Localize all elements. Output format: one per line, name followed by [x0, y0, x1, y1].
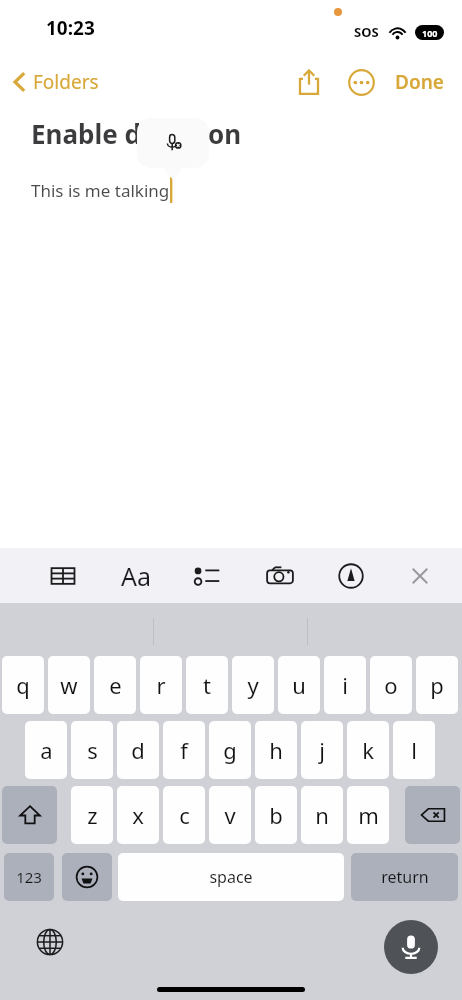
- button[interactable]: c: [163, 786, 205, 844]
- button[interactable]: p: [416, 656, 458, 714]
- button[interactable]: Done: [389, 59, 450, 105]
- staticText: r: [156, 670, 166, 700]
- staticText: y: [247, 670, 259, 700]
- staticText: SOS: [354, 23, 379, 41]
- staticText: c: [179, 800, 190, 830]
- button[interactable]: z: [71, 786, 113, 844]
- button[interactable]: Markup: [326, 548, 376, 603]
- button[interactable]: Switch keyboard: [28, 920, 72, 964]
- button[interactable]: w: [48, 656, 90, 714]
- staticText: q: [16, 670, 30, 700]
- staticText: This is me talking: [31, 179, 170, 202]
- button[interactable]: Backspace: [405, 786, 460, 844]
- staticText: u: [292, 670, 306, 700]
- button[interactable]: k: [347, 721, 389, 779]
- staticText: s: [87, 735, 98, 765]
- button[interactable]: Checklist: [182, 548, 232, 603]
- button[interactable]: d: [117, 721, 159, 779]
- button[interactable]: 123: [4, 853, 54, 901]
- staticText: t: [203, 670, 211, 700]
- button[interactable]: i: [324, 656, 366, 714]
- staticText: w: [60, 670, 78, 700]
- staticText: j: [319, 735, 325, 765]
- button[interactable]: Dictation off: [137, 118, 209, 168]
- staticText: v: [224, 800, 236, 830]
- button[interactable]: Dictate: [384, 920, 438, 974]
- staticText: p: [430, 670, 444, 700]
- staticText: space: [209, 866, 253, 888]
- button[interactable]: Aa: [108, 548, 164, 603]
- button[interactable]: h: [255, 721, 297, 779]
- button[interactable]: n: [301, 786, 343, 844]
- staticText: 123: [16, 867, 42, 887]
- button[interactable]: Camera: [255, 548, 305, 603]
- button[interactable]: y: [232, 656, 274, 714]
- button[interactable]: u: [278, 656, 320, 714]
- button[interactable]: o: [370, 656, 412, 714]
- button[interactable]: f: [163, 721, 205, 779]
- button[interactable]: r: [140, 656, 182, 714]
- staticText: g: [223, 735, 237, 765]
- button[interactable]: e: [94, 656, 136, 714]
- staticText: Done: [395, 69, 444, 95]
- button[interactable]: j: [301, 721, 343, 779]
- button[interactable]: Table: [38, 548, 88, 603]
- button[interactable]: t: [186, 656, 228, 714]
- staticText: d: [131, 735, 145, 765]
- staticText: 100: [422, 27, 438, 39]
- button[interactable]: b: [255, 786, 297, 844]
- button[interactable]: s: [71, 721, 113, 779]
- button[interactable]: a: [25, 721, 67, 779]
- staticText: m: [358, 800, 379, 830]
- button[interactable]: g: [209, 721, 251, 779]
- button[interactable]: space: [118, 853, 344, 901]
- staticText: l: [411, 735, 417, 765]
- button[interactable]: Shift: [2, 786, 57, 844]
- staticText: Aa: [121, 559, 152, 593]
- staticText: n: [315, 800, 329, 830]
- staticText: return: [381, 866, 429, 888]
- button[interactable]: return: [351, 853, 458, 901]
- staticText: k: [362, 735, 374, 765]
- staticText: f: [180, 735, 188, 765]
- button[interactable]: v: [209, 786, 251, 844]
- button[interactable]: Folders: [8, 63, 105, 101]
- staticText: Folders: [33, 69, 99, 95]
- button[interactable]: m: [347, 786, 389, 844]
- staticText: b: [269, 800, 283, 830]
- button[interactable]: x: [117, 786, 159, 844]
- staticText: x: [132, 800, 144, 830]
- button[interactable]: q: [2, 656, 44, 714]
- staticText: e: [109, 670, 122, 700]
- button[interactable]: l: [393, 721, 435, 779]
- staticText: 10:23: [46, 15, 95, 41]
- staticText: o: [384, 670, 398, 700]
- staticText: Enable dictation: [31, 116, 242, 151]
- button[interactable]: Emoji: [62, 853, 112, 901]
- button[interactable]: More options: [339, 60, 383, 104]
- staticText: a: [40, 735, 53, 765]
- staticText: h: [269, 735, 283, 765]
- button[interactable]: Share: [287, 60, 331, 104]
- button[interactable]: Close: [395, 548, 445, 603]
- staticText: z: [87, 800, 98, 830]
- staticText: i: [342, 670, 348, 700]
